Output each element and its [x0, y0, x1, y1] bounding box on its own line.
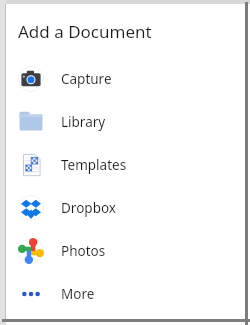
- staticText: Library: [61, 113, 106, 131]
- button[interactable]: Photos: [6, 229, 244, 272]
- other: Templates: [18, 152, 44, 178]
- other: Photos: [18, 238, 44, 264]
- staticText: Capture: [61, 70, 112, 88]
- button[interactable]: Dropbox: [6, 186, 244, 229]
- button[interactable]: Templates: [6, 143, 244, 186]
- button[interactable]: More: [6, 272, 244, 315]
- other: Dropbox: [18, 195, 44, 221]
- other: Capture: [18, 66, 44, 92]
- button[interactable]: Library: [6, 100, 244, 143]
- other: Library: [18, 109, 44, 135]
- staticText: Templates: [61, 156, 127, 174]
- staticText: More: [61, 285, 95, 303]
- staticText: Photos: [61, 242, 106, 260]
- other: More: [18, 281, 44, 307]
- staticText: Dropbox: [61, 199, 116, 217]
- staticText: Add a Document: [18, 20, 152, 43]
- button[interactable]: Capture: [6, 57, 244, 100]
